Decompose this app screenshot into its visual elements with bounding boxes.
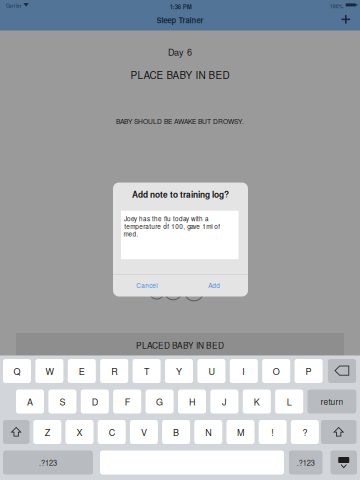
staticText: G: [156, 395, 163, 408]
button[interactable]: .?123: [289, 450, 322, 474]
staticText: Sleep Trainer: [156, 14, 203, 25]
button[interactable]: M: [226, 420, 254, 444]
staticText: .?123: [39, 457, 57, 468]
button[interactable]: A: [16, 389, 44, 413]
button[interactable]: X: [65, 420, 93, 444]
button[interactable]: [3, 420, 29, 444]
staticText: Add: [208, 281, 220, 290]
button[interactable]: F: [113, 389, 141, 413]
button[interactable]: L: [275, 389, 303, 413]
button[interactable]: space: [100, 450, 284, 474]
button[interactable]: T: [133, 359, 161, 383]
button[interactable]: ?: [291, 420, 319, 444]
button[interactable]: [321, 420, 356, 444]
staticText: A: [27, 395, 33, 408]
button[interactable]: Add: [180, 274, 248, 296]
staticText: F: [125, 395, 130, 408]
button[interactable]: .?123: [3, 450, 93, 474]
button[interactable]: S: [48, 389, 76, 413]
staticText: !: [271, 426, 274, 438]
button[interactable]: Cancel: [113, 274, 180, 296]
staticText: P: [306, 365, 312, 377]
staticText: 1:36 PM: [170, 2, 192, 11]
staticText: Q: [13, 365, 20, 377]
button[interactable]: K: [243, 389, 271, 413]
button[interactable]: [328, 359, 356, 383]
staticText: H: [189, 395, 195, 408]
staticText: Day 6: [168, 45, 192, 58]
button[interactable]: PLACED BABY IN BED: [16, 333, 344, 356]
button[interactable]: H: [178, 389, 206, 413]
staticText: U: [208, 365, 214, 377]
button[interactable]: V: [130, 420, 158, 444]
staticText: Cancel: [136, 281, 157, 290]
button[interactable]: B: [162, 420, 190, 444]
button[interactable]: P: [295, 359, 323, 383]
staticText: I: [242, 365, 245, 377]
button[interactable]: Y: [165, 359, 193, 383]
staticText: temperature of 100, gave 1ml of: [124, 222, 220, 231]
staticText: E: [79, 365, 85, 377]
staticText: N: [205, 426, 211, 438]
button[interactable]: C: [98, 420, 126, 444]
button[interactable]: [330, 450, 357, 474]
staticText: Carrier: [6, 2, 22, 9]
staticText: R: [111, 365, 117, 377]
staticText: PLACE BABY IN BED: [130, 67, 229, 82]
staticText: return: [320, 395, 343, 407]
button[interactable]: U: [197, 359, 225, 383]
button[interactable]: E: [68, 359, 96, 383]
staticText: Add note to training log?: [132, 188, 229, 200]
button[interactable]: N: [194, 420, 222, 444]
staticText: T: [144, 365, 149, 377]
button[interactable]: G: [146, 389, 174, 413]
staticText: .?123: [297, 457, 315, 468]
staticText: O: [273, 365, 280, 377]
staticText: B: [173, 426, 179, 438]
staticText: Joey has the flu today with a: [124, 214, 209, 223]
staticText: 100%: [330, 2, 343, 10]
staticText: M: [237, 426, 244, 438]
staticText: ?: [302, 426, 307, 438]
staticText: L: [287, 395, 292, 408]
button[interactable]: W: [35, 359, 63, 383]
staticText: V: [141, 426, 147, 438]
button[interactable]: J: [210, 389, 238, 413]
staticText: Y: [176, 365, 182, 377]
staticText: S: [59, 395, 65, 408]
staticText: J: [222, 395, 227, 408]
button[interactable]: return: [307, 389, 356, 413]
staticText: K: [254, 395, 260, 408]
button[interactable]: !: [259, 420, 287, 444]
button[interactable]: O: [262, 359, 290, 383]
button[interactable]: Q: [3, 359, 31, 383]
staticText: W: [45, 365, 53, 377]
staticText: Z: [45, 426, 50, 438]
staticText: BABY SHOULD BE AWAKE BUT DROWSY.: [116, 116, 244, 126]
button[interactable]: Z: [33, 420, 61, 444]
button[interactable]: I: [230, 359, 258, 383]
button[interactable]: D: [81, 389, 109, 413]
button[interactable]: Add entry: [334, 7, 358, 31]
staticText: med.: [124, 229, 139, 238]
staticText: X: [76, 426, 82, 438]
staticText: C: [109, 426, 115, 438]
staticText: PLACED BABY IN BED: [136, 339, 224, 351]
button[interactable]: R: [100, 359, 128, 383]
staticText: D: [92, 395, 98, 408]
